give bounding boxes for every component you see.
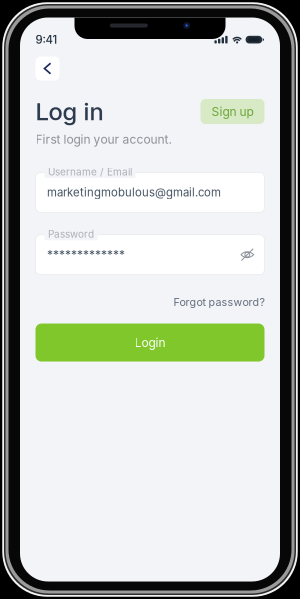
button[interactable]: Back: [35, 56, 59, 80]
button[interactable]: Show password: [240, 247, 254, 262]
button[interactable]: Sign up: [200, 99, 264, 124]
staticText: marketingmobulous@gmail.com: [47, 185, 221, 199]
staticText: Username / Email: [48, 166, 132, 178]
staticText: First login your account.: [35, 132, 171, 146]
staticText: Login: [134, 335, 165, 350]
staticText: Forgot password?: [173, 296, 264, 309]
staticText: Password: [48, 228, 94, 240]
staticText: *************: [47, 247, 125, 262]
button[interactable]: Login: [35, 324, 264, 362]
staticText: 9:41: [35, 33, 57, 46]
staticText: Sign up: [211, 104, 253, 119]
button[interactable]: Forgot password?: [173, 296, 264, 309]
staticText: Log in: [35, 97, 103, 126]
